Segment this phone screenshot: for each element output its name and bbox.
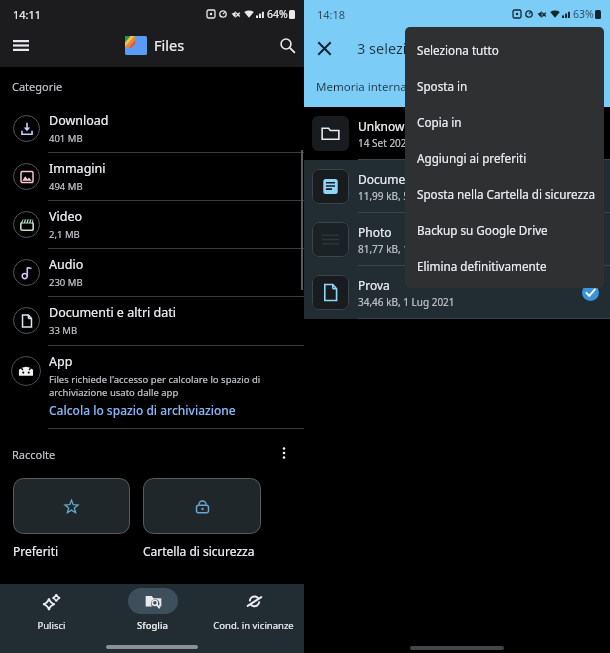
staticText: Cond. in vicinanze — [213, 619, 294, 632]
staticText: Sposta in — [417, 78, 468, 94]
button[interactable]: Search — [268, 28, 306, 62]
staticText: Documento — [358, 171, 425, 187]
button[interactable]: Photo — [304, 213, 610, 266]
staticText: 494 MB — [49, 180, 83, 193]
button[interactable]: Seleziona tutto — [405, 32, 604, 68]
staticText: 14:18 — [317, 7, 346, 22]
button[interactable]: More options — [272, 441, 296, 465]
button[interactable] — [143, 478, 261, 534]
staticText: 81,77 kB, 1 Lug 2021 — [358, 242, 455, 256]
button[interactable]: Copia in — [405, 104, 604, 140]
staticText: 230 MB — [49, 276, 83, 289]
staticText: Unknown — [358, 118, 412, 134]
staticText: 11,99 kB, 5 Set 2021 — [358, 189, 452, 203]
staticText: 14 Set 2021 — [358, 136, 413, 150]
button[interactable]: Aggiungi ai preferiti — [405, 140, 604, 176]
staticText: Cartella di sicurezza — [143, 543, 255, 559]
staticText: Photo — [358, 224, 392, 240]
staticText: Seleziona tutto — [417, 42, 499, 58]
staticText: 3 selezionati — [357, 38, 442, 58]
staticText: 33 MB — [49, 324, 78, 337]
staticText: Pulisci — [37, 619, 66, 632]
staticText: Calcola lo spazio di archiviazione — [49, 402, 236, 418]
staticText: Elimina definitivamente — [417, 258, 547, 274]
button[interactable]: Video — [0, 200, 304, 248]
button[interactable]: Documenti e altri dati — [0, 296, 304, 344]
button[interactable]: Sfoglia — [102, 584, 203, 636]
staticText: Documenti e altri dati — [49, 304, 176, 321]
button[interactable]: Immagini — [0, 152, 304, 200]
button[interactable]: Download — [0, 104, 304, 152]
staticText: Audio — [49, 256, 84, 273]
staticText: Aggiungi ai preferiti — [417, 150, 527, 166]
button[interactable]: Pulisci — [0, 584, 102, 636]
staticText: Files richiede l'accesso per calcolare l… — [49, 373, 264, 399]
staticText: Memoria interna — [316, 79, 407, 95]
staticText: Backup su Google Drive — [417, 222, 548, 238]
button[interactable]: Close — [304, 28, 344, 68]
staticText: Sposta nella Cartella di sicurezza — [417, 186, 596, 202]
staticText: 63% — [573, 7, 594, 21]
staticText: Video — [49, 208, 83, 225]
staticText: Copia in — [417, 114, 462, 130]
staticText: 64% — [267, 7, 288, 21]
staticText: 401 MB — [49, 132, 83, 145]
button[interactable]: Documento — [304, 160, 610, 213]
button[interactable]: Elimina definitivamente — [405, 248, 604, 284]
staticText: 34,46 kB, 1 Lug 2021 — [358, 295, 455, 309]
button[interactable]: Sposta in — [405, 68, 604, 104]
button[interactable] — [13, 478, 130, 534]
staticText: Immagini — [49, 160, 106, 177]
staticText: 2,1 MB — [49, 228, 80, 241]
staticText: 14:11 — [13, 7, 42, 22]
staticText: Sfoglia — [137, 619, 168, 632]
staticText: Prova — [358, 277, 390, 293]
staticText: Download — [49, 112, 109, 129]
button[interactable]: Menu — [2, 28, 40, 62]
button[interactable]: Cond. in vicinanze — [203, 584, 304, 636]
button[interactable]: Unknown — [304, 107, 610, 160]
staticText: Files — [154, 35, 185, 55]
button[interactable]: Audio — [0, 248, 304, 296]
button[interactable]: Calcola lo spazio di archiviazione — [40, 396, 245, 424]
staticText: Preferiti — [13, 543, 59, 559]
button[interactable]: Backup su Google Drive — [405, 212, 604, 248]
button[interactable]: Prova — [304, 266, 610, 319]
staticText: Categorie — [12, 79, 63, 94]
button[interactable]: Sposta nella Cartella di sicurezza — [405, 176, 604, 212]
staticText: App — [49, 353, 73, 370]
staticText: Raccolte — [12, 447, 56, 462]
